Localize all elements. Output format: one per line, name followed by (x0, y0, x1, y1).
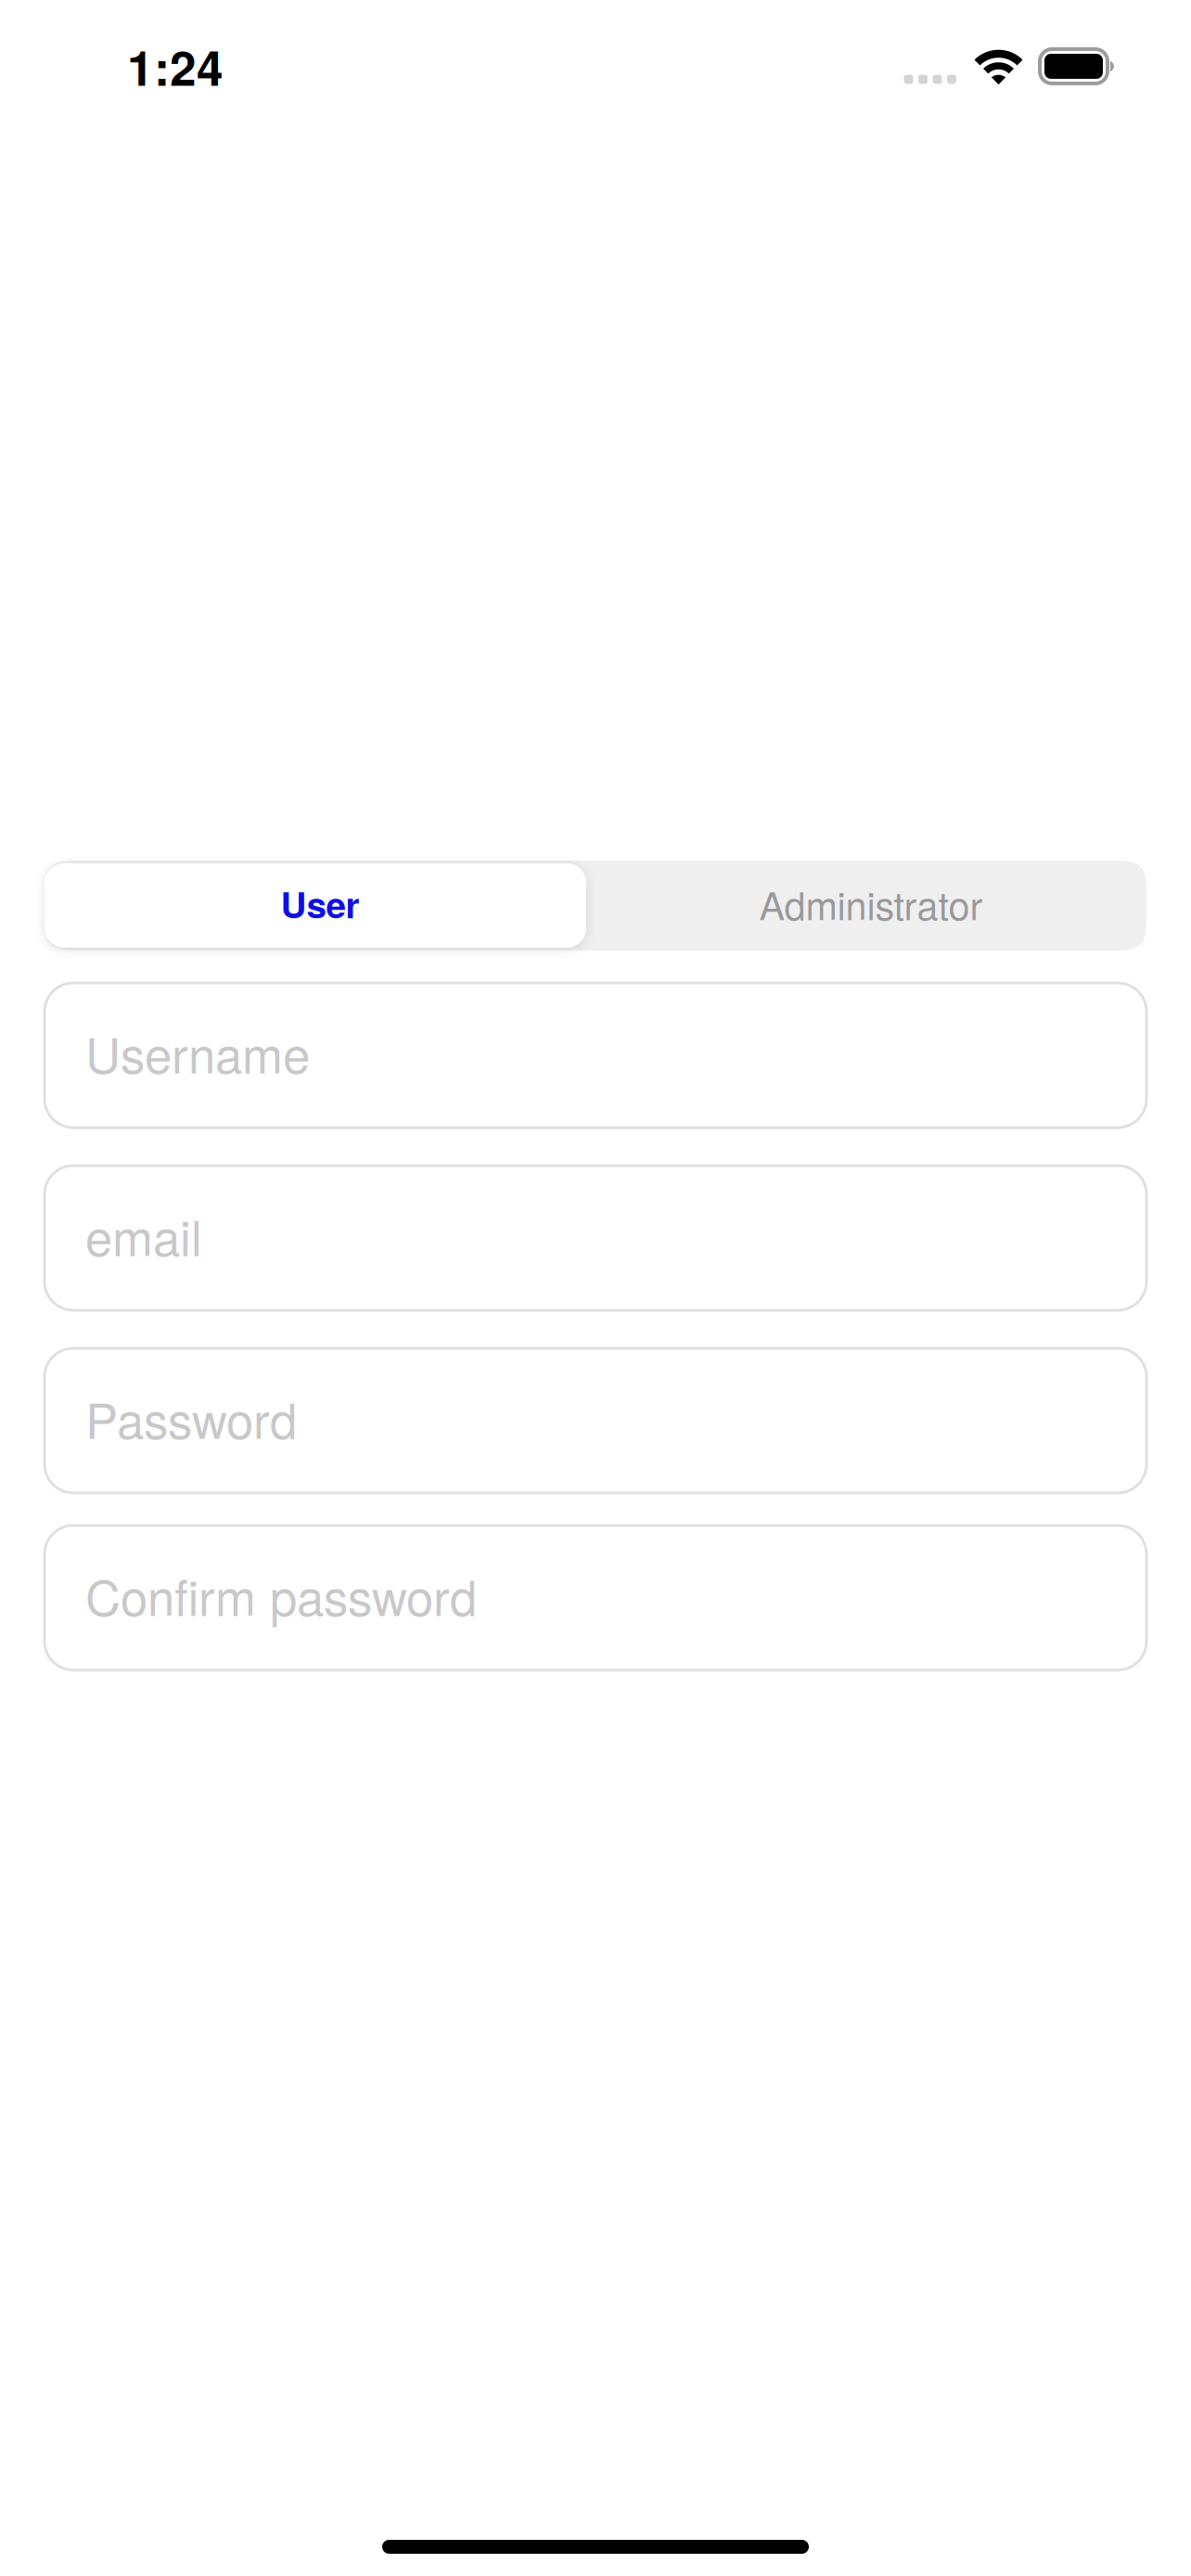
button[interactable]: email (45, 1166, 1146, 1310)
staticText: Password (85, 1383, 297, 1453)
staticText: email (85, 1200, 202, 1270)
staticText: Username (85, 1018, 310, 1087)
button[interactable]: Password (45, 1348, 1146, 1493)
button[interactable]: Administrator (595, 861, 1146, 950)
button[interactable]: Confirm password (45, 1525, 1146, 1670)
staticText: Confirm password (85, 1560, 477, 1630)
staticText: User (281, 878, 359, 929)
button[interactable]: User (45, 861, 595, 950)
button[interactable]: Username (45, 983, 1146, 1128)
staticText: 1:24 (127, 32, 224, 100)
staticText: Administrator (759, 876, 983, 931)
